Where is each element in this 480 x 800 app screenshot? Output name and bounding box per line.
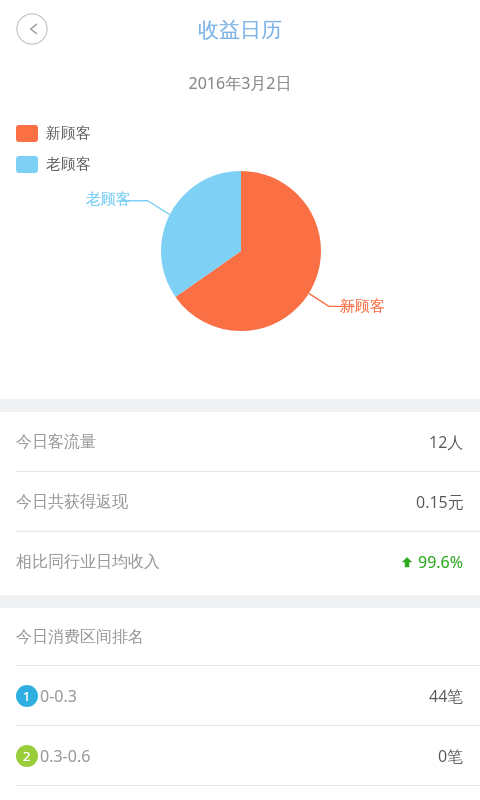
staticText: 今日消费区间排名: [16, 627, 144, 647]
staticText: 今日共获得返现: [16, 492, 128, 512]
staticText: 0-0.3: [40, 685, 77, 707]
staticText: 老顾客: [86, 190, 131, 209]
staticText: 1: [23, 687, 31, 705]
staticText: 相比同行业日均收入: [16, 552, 160, 572]
staticText: 0.3-0.6: [40, 745, 91, 767]
button[interactable]: Back: [16, 13, 48, 45]
button[interactable]: 今日客流量: [0, 412, 480, 471]
staticText: 今日客流量: [16, 432, 96, 452]
staticText: 0.15元: [416, 491, 464, 513]
staticText: 老顾客: [46, 155, 91, 174]
staticText: 12人: [429, 431, 464, 453]
staticText: 2016年3月2日: [0, 72, 480, 94]
button[interactable]: 老顾客: [16, 154, 91, 174]
staticText: 2: [23, 747, 31, 765]
button[interactable]: 今日消费区间排名: [0, 608, 480, 665]
button[interactable]: 相比同行业日均收入: [0, 532, 480, 591]
staticText: 新顾客: [340, 297, 385, 316]
staticText: 收益日历: [0, 17, 480, 43]
button[interactable]: 2: [0, 726, 480, 785]
staticText: 新顾客: [46, 124, 91, 143]
button[interactable]: 新顾客: [16, 123, 91, 143]
staticText: 44笔: [429, 685, 464, 707]
button[interactable]: 1: [0, 666, 480, 725]
staticText: 99.6%: [418, 551, 464, 573]
button[interactable]: 今日共获得返现: [0, 472, 480, 531]
staticText: 0笔: [438, 745, 464, 767]
